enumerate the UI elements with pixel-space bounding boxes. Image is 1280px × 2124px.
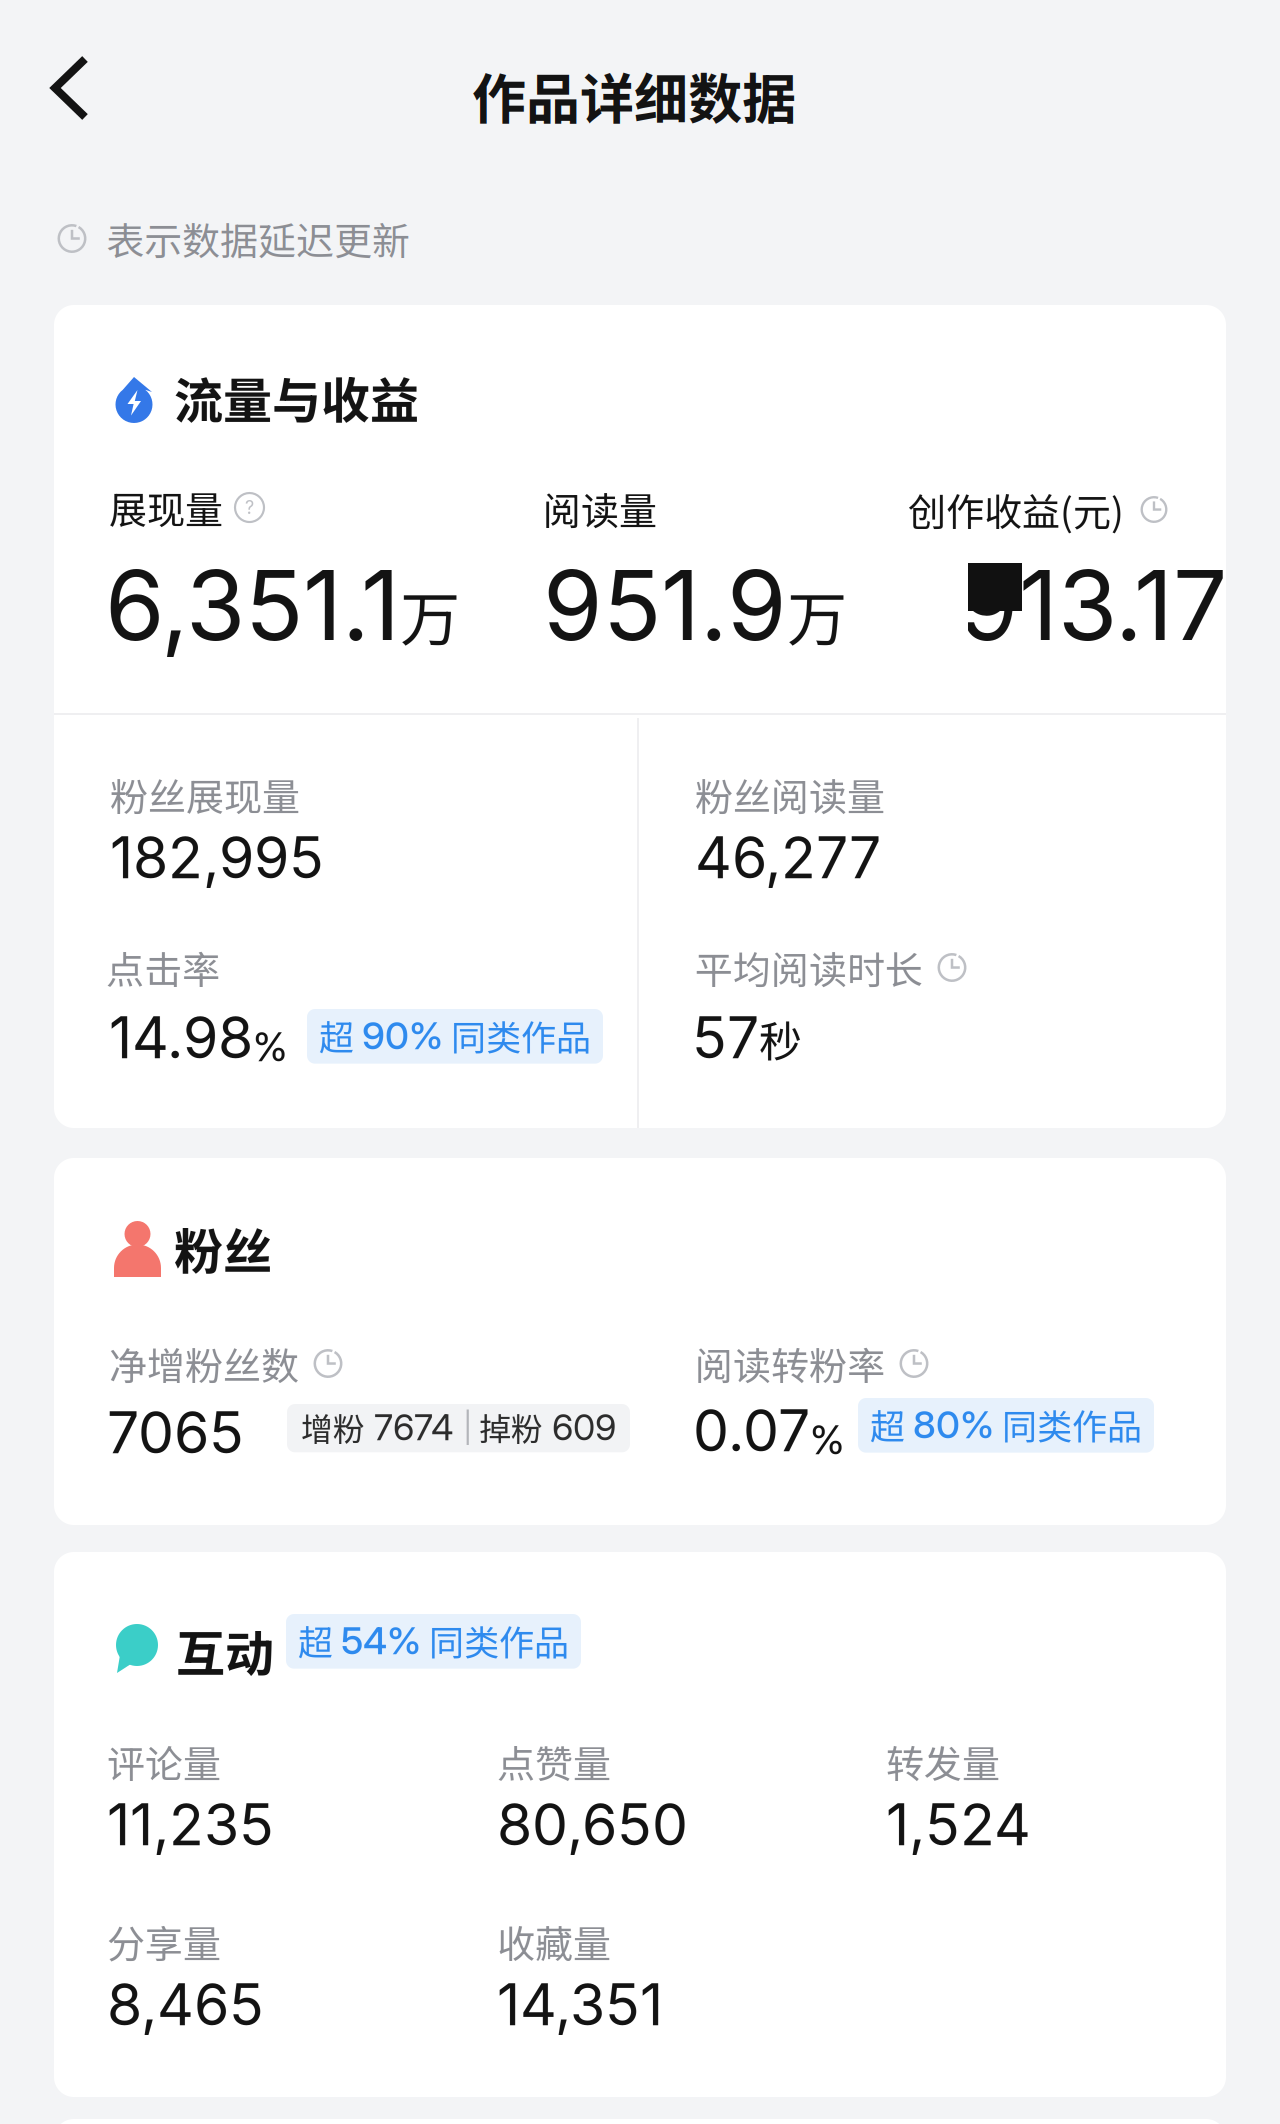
staticText: 57 (692, 1003, 759, 1072)
staticText: 182,995 (110, 823, 324, 892)
staticText: 1,524 (886, 1790, 1031, 1859)
staticText: 阅读转粉率 (695, 1336, 885, 1391)
staticText: 互动 (176, 1615, 274, 1686)
staticText: 超 (870, 1399, 913, 1450)
staticText: 90% (362, 1012, 443, 1058)
staticText: 0.07 (693, 1396, 810, 1465)
staticText: 14,351 (497, 1970, 663, 2039)
staticText: 粉丝展现量 (110, 767, 300, 822)
staticText: 46,277 (695, 823, 881, 892)
staticText: 分享量 (107, 1914, 221, 1969)
staticText: 951.9 (543, 547, 787, 663)
staticText: 14.98 (109, 1003, 253, 1072)
button[interactable]: 返回 (0, 0, 110, 118)
staticText: 同类作品 (994, 1399, 1142, 1450)
staticText: % (253, 1023, 287, 1071)
staticText: ? (245, 497, 254, 518)
staticText: 万 (787, 571, 847, 658)
staticText: 609 (543, 1405, 616, 1449)
staticText: % (810, 1416, 844, 1464)
staticText: 11,235 (107, 1790, 274, 1859)
staticText: 粉丝阅读量 (695, 767, 885, 822)
staticText: 创作收益(元) (908, 482, 1124, 537)
staticText: 万 (400, 571, 460, 658)
staticText: 展现量 (109, 480, 223, 535)
staticText: 点赞量 (497, 1734, 611, 1789)
staticText: 阅读量 (543, 481, 657, 536)
staticText: 点击率 (106, 940, 220, 995)
staticText: 流量与收益 (174, 362, 419, 433)
staticText: 秒 (759, 1008, 802, 1070)
staticText: 80,650 (497, 1790, 688, 1859)
staticText: 粉丝 (174, 1213, 272, 1284)
staticText: 增粉 (301, 1404, 365, 1450)
staticText: 8,465 (107, 1970, 264, 2039)
staticText: 80% (913, 1401, 994, 1447)
staticText: 表示数据延迟更新 (106, 211, 410, 266)
staticText: 超 (298, 1615, 341, 1666)
staticText: 6,351.1 (105, 547, 400, 663)
staticText: 转发量 (886, 1734, 1000, 1789)
staticText: 同类作品 (443, 1010, 591, 1061)
staticText: 同类作品 (421, 1615, 569, 1666)
staticText: 7674 (365, 1405, 463, 1449)
staticText: 7065 (107, 1398, 244, 1467)
staticText: 54% (341, 1617, 421, 1663)
staticText: 作品详细数据 (472, 56, 796, 134)
staticText: | (463, 1409, 472, 1445)
staticText: 913.17 (959, 547, 1227, 663)
staticText: 收藏量 (497, 1914, 611, 1969)
staticText: 掉粉 (472, 1404, 543, 1450)
staticText: 平均阅读时长 (695, 940, 923, 995)
staticText: 评论量 (107, 1734, 221, 1789)
staticText: 净增粉丝数 (109, 1336, 299, 1391)
staticText: 超 (319, 1010, 362, 1061)
